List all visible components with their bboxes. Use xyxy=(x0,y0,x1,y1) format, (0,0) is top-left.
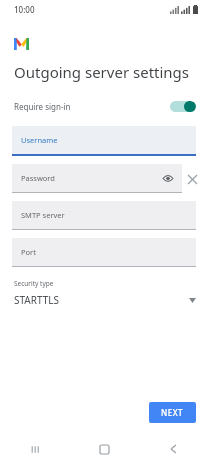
button[interactable]: Password xyxy=(12,164,182,193)
staticText: NEXT xyxy=(161,407,184,418)
button[interactable]: Clear password xyxy=(182,169,202,189)
staticText: Password xyxy=(21,173,55,183)
button[interactable]: NEXT xyxy=(149,402,196,423)
staticText: SMTP server xyxy=(21,210,65,220)
button[interactable]: Port xyxy=(12,238,196,267)
staticText: Port xyxy=(21,247,36,257)
staticText: Security type xyxy=(14,279,54,288)
staticText: STARTTLS xyxy=(14,293,60,307)
button[interactable]: Require sign-in xyxy=(0,95,208,117)
button[interactable]: Show password xyxy=(161,171,175,185)
staticText: Require sign-in xyxy=(14,101,71,112)
button[interactable]: Security type xyxy=(0,279,208,307)
staticText: Outgoing server settings xyxy=(14,62,190,82)
button[interactable]: Recents xyxy=(0,435,70,463)
button[interactable]: Back xyxy=(139,435,208,463)
button[interactable]: Username xyxy=(12,126,196,156)
staticText: 10:00 xyxy=(14,4,35,15)
staticText: Username xyxy=(21,135,58,145)
button[interactable]: Home xyxy=(70,435,139,463)
button[interactable]: SMTP server xyxy=(12,201,196,230)
